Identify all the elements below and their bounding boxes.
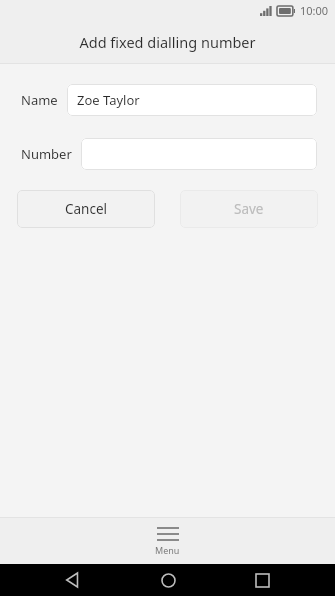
staticText: Number	[21, 145, 72, 163]
button[interactable]: Home	[146, 564, 190, 596]
button[interactable]: Save	[180, 190, 318, 228]
button[interactable]: Menu	[0, 518, 335, 564]
staticText: Add fixed dialling number	[79, 32, 256, 52]
staticText: Name	[21, 91, 58, 109]
other: Menu	[157, 527, 179, 541]
button[interactable]: Back	[51, 564, 95, 596]
staticText: Cancel	[65, 200, 108, 218]
button[interactable]: Recent apps	[240, 564, 284, 596]
button[interactable]: Cancel	[17, 190, 155, 228]
button[interactable]	[81, 138, 317, 170]
staticText: Zoe Taylor	[77, 91, 140, 109]
button[interactable]: Zoe Taylor	[67, 84, 317, 116]
staticText: 10:00	[300, 3, 329, 18]
staticText: Menu	[155, 544, 180, 556]
staticText: Save	[234, 200, 264, 218]
